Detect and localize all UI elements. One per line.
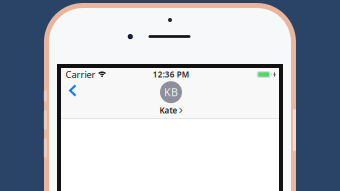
button[interactable]: KB (143, 81, 199, 115)
button[interactable]: Back (61, 76, 85, 104)
staticText: 12:36 PM (153, 69, 189, 80)
staticText: KB (164, 85, 178, 99)
staticText: Carrier (65, 68, 95, 81)
staticText: Kate (159, 105, 177, 116)
